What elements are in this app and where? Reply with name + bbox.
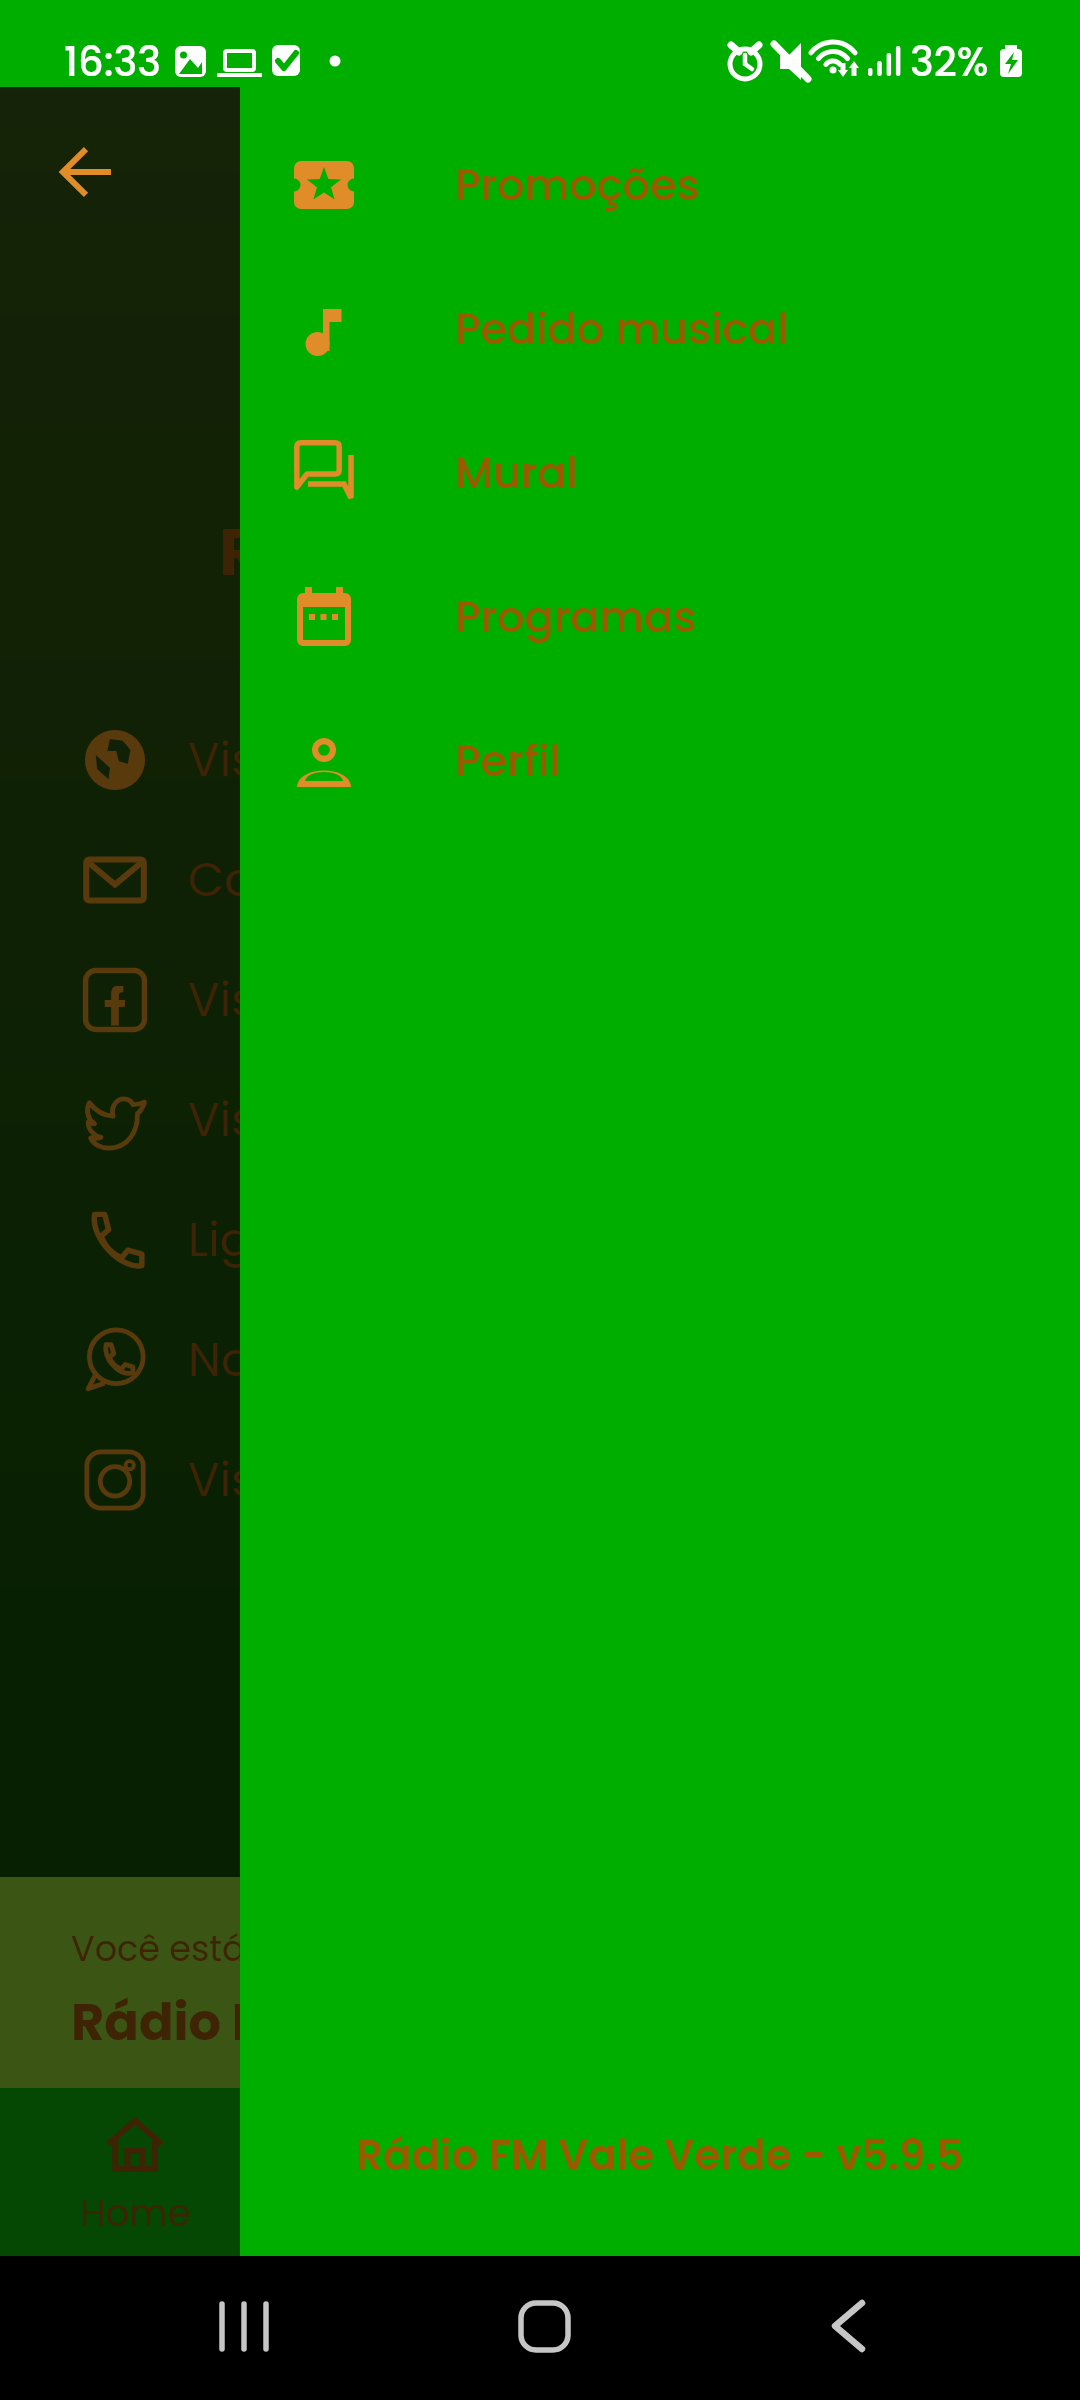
staticText: Você está ouvindo:	[71, 1924, 405, 1973]
button[interactable]: Visite nosso Instagram	[0, 1420, 1080, 1540]
staticText: Visite nosso site	[188, 727, 561, 793]
staticText: Perfil	[455, 731, 561, 791]
staticText: Rádio FM Vale Verde	[71, 1986, 604, 2057]
button[interactable]: Programas	[240, 545, 1080, 689]
staticText: Contato	[188, 847, 381, 913]
button[interactable]: Nosso WhatsApp	[0, 1300, 1080, 1420]
staticText: Visite nosso Facebook	[188, 967, 708, 1033]
button[interactable]: Promoções	[240, 113, 1080, 257]
button[interactable]: Pedido musical	[240, 257, 1080, 401]
staticText: Promoções	[455, 155, 700, 215]
button[interactable]: Visite nosso Twitter	[0, 1060, 1080, 1180]
button[interactable]: Mural	[240, 401, 1080, 545]
button[interactable]: Visite nosso Facebook	[0, 940, 1080, 1060]
button[interactable]: Promoções	[240, 87, 1080, 2256]
staticText: Home	[80, 2187, 191, 2239]
staticText: Programas	[455, 587, 697, 647]
staticText: Nosso WhatsApp	[188, 1327, 588, 1393]
staticText: 16:33	[64, 34, 161, 90]
staticText: Pedido musical	[455, 299, 789, 359]
staticText: Rádio FM Vale Verde - v5.9.5	[356, 2126, 964, 2185]
staticText: Ligue para nós	[188, 1207, 534, 1273]
button[interactable]: Visite nosso site	[0, 700, 1080, 820]
staticText: Rádio FM Vale Verde	[219, 507, 898, 598]
button[interactable]: Home	[55, 2115, 215, 2239]
button[interactable]: Contato	[0, 820, 1080, 940]
button[interactable]: Ligue para nós	[0, 1180, 1080, 1300]
staticText: 32%	[910, 34, 989, 90]
button[interactable]: Perfil	[240, 689, 1080, 833]
staticText: Visite nosso Instagram	[188, 1447, 723, 1513]
button[interactable]: Voltar	[44, 130, 128, 214]
staticText: Mural	[455, 443, 578, 503]
staticText: Visite nosso Twitter	[188, 1087, 635, 1153]
